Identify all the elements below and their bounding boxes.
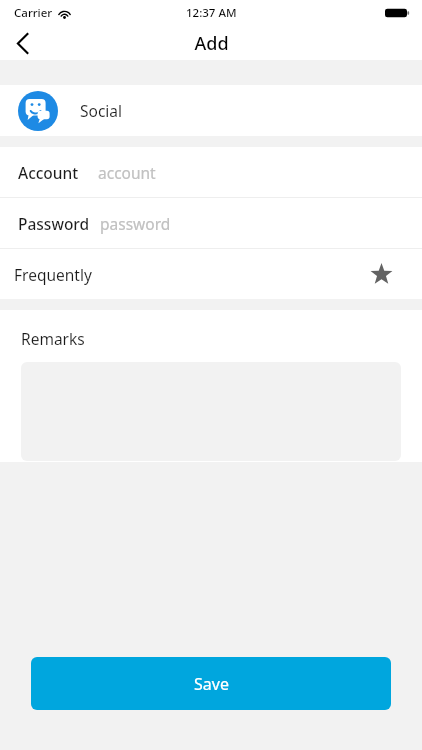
- button[interactable]: Password: [0, 198, 422, 248]
- staticText: Account: [18, 162, 79, 183]
- staticText: Carrier: [14, 5, 53, 21]
- staticText: Save: [194, 673, 229, 695]
- staticText: Remarks: [21, 328, 85, 349]
- staticText: Password: [18, 213, 90, 234]
- button[interactable]: Account: [0, 147, 422, 197]
- staticText: 12:37 AM: [186, 5, 237, 21]
- staticText: password: [100, 213, 171, 234]
- button[interactable]: Frequently: [0, 249, 422, 299]
- staticText: account: [98, 162, 156, 183]
- button[interactable]: Save: [31, 657, 391, 710]
- staticText: Add: [194, 31, 229, 56]
- button[interactable]: Social: [0, 85, 422, 136]
- button[interactable]: Back: [0, 26, 44, 60]
- staticText: Frequently: [14, 264, 92, 285]
- other: Frequently: [366, 259, 396, 289]
- staticText: Social: [80, 100, 123, 121]
